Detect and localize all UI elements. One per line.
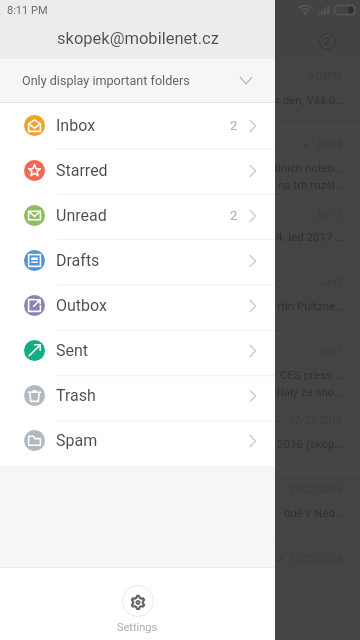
button[interactable]: Trash (0, 373, 275, 418)
staticText: Trash (56, 386, 96, 405)
staticText: dně v Ned… (284, 506, 343, 519)
button[interactable]: Inbox (0, 103, 275, 148)
button[interactable]: Spam (0, 418, 275, 463)
staticText: riály ze sho… (277, 385, 343, 398)
staticText: 2 (324, 35, 331, 48)
button[interactable]: Settings (0, 568, 275, 640)
staticText: Spam (56, 431, 98, 450)
button[interactable]: Sent (0, 328, 275, 373)
staticText: na trh rozšl… (278, 178, 343, 191)
button[interactable]: Unread (0, 193, 275, 238)
staticText: 8:09PM (308, 71, 343, 83)
staticText: Inbox (56, 116, 96, 135)
staticText: skopek@mobilenet.cz (57, 29, 219, 48)
staticText: Outbox (56, 296, 107, 315)
other: Settings (122, 585, 154, 617)
button[interactable]: Starred (0, 148, 275, 193)
staticText: 2016 (skop… (277, 437, 343, 450)
staticText: Drafts (56, 251, 100, 270)
staticText: 2 (230, 208, 238, 223)
staticText: 4. led 2017 … (276, 230, 343, 243)
staticText: Only display important folders (22, 73, 190, 88)
staticText: Sent (56, 341, 89, 360)
staticText: 8:11 PM (7, 4, 48, 17)
staticText: šlních noteb… (272, 161, 343, 174)
staticText: rtin Pultzne… (277, 299, 343, 312)
staticText: CES press … (280, 368, 343, 381)
button[interactable]: Outbox (0, 283, 275, 328)
staticText: Starred (56, 161, 108, 180)
button[interactable]: Drafts (0, 238, 275, 283)
staticText: 2 (230, 118, 238, 133)
button[interactable]: Only display important folders (0, 59, 275, 102)
staticText: Unread (56, 206, 107, 225)
staticText: r den, Váš ú… (276, 93, 343, 106)
staticText: Settings (117, 621, 158, 634)
